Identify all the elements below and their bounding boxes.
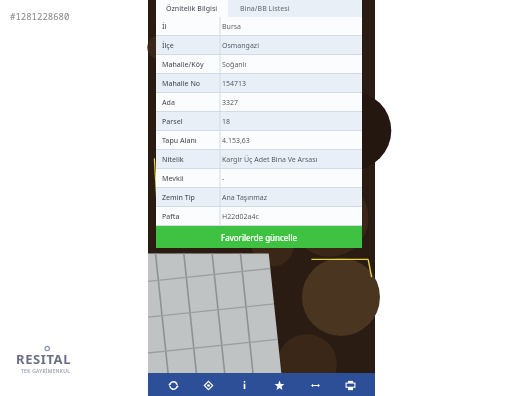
staticText: Bursa <box>222 22 242 32</box>
staticText: Ada <box>162 98 175 108</box>
staticText: Bina/BB Listesi <box>240 4 290 14</box>
staticText: Zemin Tip <box>162 193 195 203</box>
button[interactable]: Measure <box>304 374 326 396</box>
button[interactable]: Tapu Alanı <box>156 131 362 150</box>
button[interactable]: Bina/BB Listesi <box>228 0 302 17</box>
staticText: #1281228680 <box>10 10 70 22</box>
button[interactable]: Locate <box>197 374 219 396</box>
staticText: 3327 <box>222 98 239 108</box>
button[interactable]: Öznitelik Bilgisi <box>156 0 228 17</box>
staticText: Osmangazi <box>222 41 259 51</box>
staticText: Favorilerde güncelle <box>221 232 297 243</box>
staticText: Parsel <box>162 117 183 127</box>
staticText: - <box>222 174 225 184</box>
staticText: Kargir Üç Adet Bina Ve Arsası <box>222 155 318 165</box>
staticText: Nitelik <box>162 155 184 165</box>
staticText: Tapu Alanı <box>162 136 197 146</box>
button[interactable]: Favorite <box>268 374 290 396</box>
staticText: Mevkii <box>162 174 184 184</box>
staticText: Öznitelik Bilgisi <box>166 4 218 14</box>
button[interactable]: Favorilerde güncelle <box>156 226 362 248</box>
button[interactable]: Refresh <box>162 374 184 396</box>
staticText: 18 <box>222 117 231 127</box>
button[interactable]: Pafta <box>156 207 362 226</box>
button[interactable]: Zemin Tip <box>156 188 362 207</box>
staticText: TEK GAYRİMENKUL <box>21 368 71 375</box>
button[interactable]: Nitelik <box>156 150 362 169</box>
staticText: H22d02a4c <box>222 212 259 222</box>
staticText: 154713 <box>222 79 247 89</box>
button[interactable]: İlçe <box>156 36 362 55</box>
staticText: Pafta <box>162 212 180 222</box>
button[interactable]: Parsel <box>156 112 362 131</box>
button[interactable]: Mahalle/Köy <box>156 55 362 74</box>
button[interactable]: Mevkii <box>156 169 362 188</box>
staticText: 4.153,63 <box>222 136 250 146</box>
staticText: İlçe <box>162 41 174 51</box>
staticText: Mahalle No <box>162 79 201 89</box>
button[interactable]: Ada <box>156 93 362 112</box>
button[interactable]: İl <box>156 17 362 36</box>
staticText: Soğanlı <box>222 60 247 70</box>
staticText: Mahalle/Köy <box>162 60 204 70</box>
button[interactable]: Info <box>233 374 255 396</box>
button[interactable]: Mahalle No <box>156 74 362 93</box>
staticText: RESITAL <box>16 350 72 368</box>
button[interactable]: Print <box>339 374 361 396</box>
staticText: Ana Taşınmaz <box>222 193 268 203</box>
staticText: İl <box>162 22 167 32</box>
